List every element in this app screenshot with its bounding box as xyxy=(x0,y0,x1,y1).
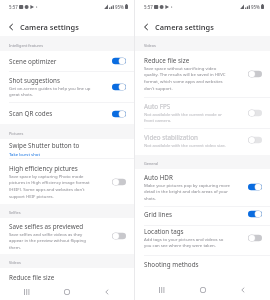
button[interactable]: Switch off xyxy=(112,232,126,240)
button[interactable]: Swipe Shutter button to xyxy=(0,139,134,158)
staticText: Save selfies as previewed xyxy=(9,222,84,231)
button[interactable]: Back xyxy=(140,21,152,33)
staticText: 95% xyxy=(251,4,260,10)
button[interactable]: Switch on xyxy=(112,57,126,65)
staticText: 5:57 xyxy=(144,4,153,10)
staticText: General xyxy=(144,161,158,166)
button[interactable]: Switch on xyxy=(248,210,262,218)
staticText: Take burst shot xyxy=(9,151,40,157)
button[interactable]: Switch off xyxy=(112,178,126,186)
staticText: Save space without sacrificing video qua… xyxy=(144,65,226,92)
staticText: Make your pictures pop by capturing more… xyxy=(144,182,231,202)
staticText: Shooting methods xyxy=(144,260,199,269)
staticText: Camera settings xyxy=(155,22,214,32)
staticText: Camera settings xyxy=(20,22,79,32)
button[interactable]: Auto HDR xyxy=(135,169,270,206)
staticText: Videos xyxy=(9,260,21,265)
button[interactable]: Shot suggestions xyxy=(0,72,134,102)
staticText: Save space by capturing Photo mode pictu… xyxy=(9,173,90,200)
button[interactable]: Switch on xyxy=(112,110,126,118)
button[interactable]: Scan QR codes xyxy=(0,103,134,124)
staticText: Pictures xyxy=(9,131,24,136)
staticText: Not available with the current video siz… xyxy=(144,142,226,148)
staticText: Swipe Shutter button to xyxy=(9,141,80,150)
staticText: Grid lines xyxy=(144,210,173,219)
button[interactable]: Auto FPS xyxy=(135,98,270,128)
staticText: 5:57 xyxy=(9,4,18,10)
staticText: Add tags to your pictures and videos so … xyxy=(144,236,224,249)
button[interactable]: Switch on xyxy=(112,83,126,91)
staticText: Reduce file size xyxy=(9,273,55,282)
button[interactable]: Switch on xyxy=(248,183,262,191)
staticText: Scene optimizer xyxy=(9,57,57,66)
button[interactable]: High efficiency pictures xyxy=(0,159,134,204)
button[interactable]: Save selfies as previewed xyxy=(0,218,134,254)
button[interactable]: Reduce file size xyxy=(0,268,134,287)
staticText: Video stabilization xyxy=(144,133,198,142)
button[interactable]: Switch off xyxy=(248,70,262,78)
button[interactable]: Shooting methods xyxy=(135,256,270,275)
button[interactable]: Home xyxy=(54,287,80,296)
button[interactable]: Video stabilization xyxy=(135,129,270,155)
button[interactable]: Switch off xyxy=(248,109,262,117)
staticText: Location tags xyxy=(144,227,184,236)
staticText: Not available with the current mode or f… xyxy=(144,111,223,124)
button[interactable]: Switch off xyxy=(248,234,262,242)
button[interactable]: Back xyxy=(230,283,256,296)
staticText: Selfies xyxy=(9,210,21,215)
button[interactable]: Home xyxy=(190,283,216,296)
button[interactable]: Recents xyxy=(149,283,175,296)
staticText: High efficiency pictures xyxy=(9,164,78,173)
staticText: Auto HDR xyxy=(144,173,173,182)
button[interactable]: Reduce file size xyxy=(135,51,270,97)
staticText: Shot suggestions xyxy=(9,76,60,85)
staticText: Save selfies and selfie videos as they a… xyxy=(9,231,86,251)
button[interactable]: Back xyxy=(5,21,17,33)
button[interactable]: Grid lines xyxy=(135,207,270,225)
button[interactable]: Recents xyxy=(14,287,40,296)
staticText: Videos xyxy=(144,43,156,48)
staticText: Scan QR codes xyxy=(9,109,53,118)
button[interactable]: Back xyxy=(94,287,120,296)
staticText: 95% xyxy=(115,4,124,10)
button[interactable]: Switch off xyxy=(248,136,262,144)
staticText: Get on-screen guides to help you line up… xyxy=(9,85,91,98)
button[interactable]: Location tags xyxy=(135,226,270,255)
button[interactable]: Scene optimizer xyxy=(0,51,134,71)
staticText: Intelligent features xyxy=(9,43,44,48)
staticText: Auto FPS xyxy=(144,102,171,111)
staticText: Reduce file size xyxy=(144,56,190,65)
